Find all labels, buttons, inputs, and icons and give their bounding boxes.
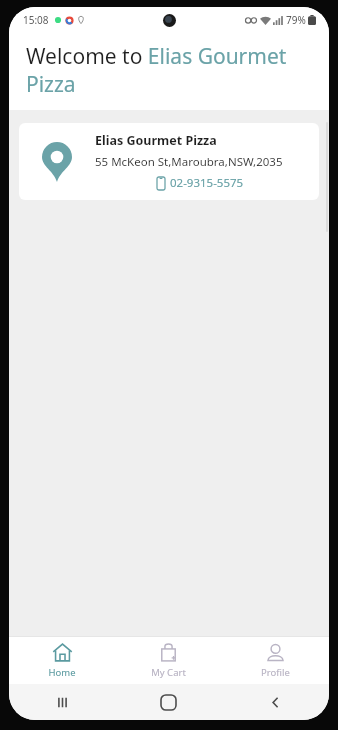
staticText: 02-9315-5575 [170,175,244,191]
button[interactable]: Recents [55,695,70,710]
staticText: My Cart [151,666,186,679]
staticText: 15:08 [23,13,49,27]
staticText: Profile [261,666,290,679]
button[interactable]: Home [9,637,115,684]
button[interactable]: My Cart [115,637,222,684]
staticText: Home [48,666,76,679]
button[interactable]: Home [161,695,176,710]
staticText: 55 McKeon St,Maroubra,NSW,2035 [95,154,283,170]
button[interactable]: Profile [222,637,329,684]
staticText: 79% [286,13,306,27]
staticText: Welcome to Elias Gourmet Pizza [26,42,315,98]
staticText: Elias Gourmet Pizza [95,132,217,149]
button[interactable]: Elias Gourmet Pizza [19,123,319,200]
button[interactable]: Back [268,695,283,710]
